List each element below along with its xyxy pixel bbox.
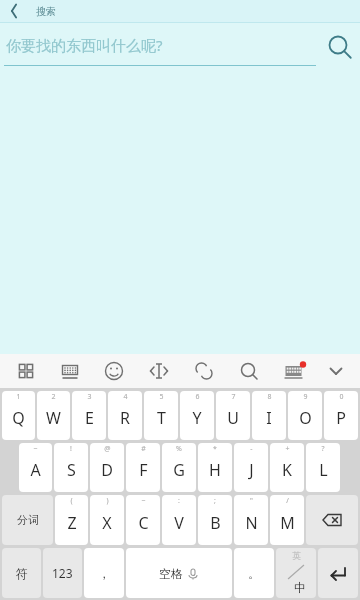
button[interactable]: Search bbox=[320, 27, 360, 67]
button[interactable]: Theme bbox=[271, 354, 316, 388]
button[interactable]: Backspace bbox=[306, 495, 358, 545]
button[interactable]: + bbox=[270, 443, 304, 492]
button[interactable]: 分词 bbox=[2, 495, 53, 545]
staticText: J bbox=[249, 459, 254, 481]
button[interactable]: 7 bbox=[216, 391, 250, 440]
staticText: L bbox=[319, 459, 328, 481]
staticText: R bbox=[120, 407, 130, 429]
button[interactable]: 3 bbox=[72, 391, 106, 440]
button[interactable]: 1 bbox=[2, 391, 35, 440]
button[interactable]: # bbox=[126, 443, 160, 492]
staticText: Y bbox=[192, 407, 202, 429]
button[interactable]: Collapse bbox=[316, 354, 356, 388]
staticText: 空格 bbox=[159, 566, 183, 581]
button[interactable]: 6 bbox=[180, 391, 214, 440]
staticText: O bbox=[299, 407, 312, 429]
staticText: ? bbox=[321, 444, 325, 454]
button[interactable]: " bbox=[234, 495, 268, 545]
staticText: S bbox=[67, 459, 76, 481]
button[interactable]: % bbox=[162, 443, 196, 492]
staticText: K bbox=[282, 459, 292, 481]
button[interactable]: : bbox=[162, 495, 196, 545]
staticText: A bbox=[30, 459, 41, 481]
staticText: ~ bbox=[141, 496, 146, 506]
staticText: Q bbox=[12, 407, 25, 429]
staticText: H bbox=[209, 459, 221, 481]
button[interactable]: ~ bbox=[126, 495, 160, 545]
staticText: # bbox=[141, 444, 146, 454]
staticText: 7 bbox=[231, 392, 236, 402]
staticText: ! bbox=[70, 444, 72, 454]
button[interactable]: 2 bbox=[37, 391, 70, 440]
staticText: ) bbox=[106, 496, 109, 506]
button[interactable]: ( bbox=[55, 495, 88, 545]
staticText: ; bbox=[214, 496, 216, 506]
button[interactable]: / bbox=[270, 495, 304, 545]
button[interactable]: ~ bbox=[19, 443, 52, 492]
staticText: 6 bbox=[195, 392, 200, 402]
staticText: 搜索 bbox=[36, 5, 56, 18]
button[interactable]: 4 bbox=[108, 391, 142, 440]
staticText: " bbox=[250, 496, 253, 506]
staticText: 中 bbox=[294, 580, 306, 595]
button[interactable]: Emoji bbox=[92, 354, 136, 388]
staticText: V bbox=[174, 512, 184, 534]
button[interactable]: - bbox=[234, 443, 268, 492]
button[interactable]: Search bbox=[226, 354, 271, 388]
button[interactable]: 5 bbox=[144, 391, 178, 440]
button[interactable]: ; bbox=[198, 495, 232, 545]
button[interactable]: 0 bbox=[324, 391, 358, 440]
staticText: N bbox=[245, 512, 258, 534]
staticText: @ bbox=[104, 444, 111, 454]
staticText: - bbox=[250, 444, 253, 454]
staticText: F bbox=[139, 459, 148, 481]
button[interactable]: Cursor bbox=[136, 354, 181, 388]
button[interactable]: Clipboard bbox=[181, 354, 226, 388]
staticText: : bbox=[178, 496, 180, 506]
button[interactable]: 123 bbox=[43, 548, 82, 598]
staticText: I bbox=[266, 407, 272, 429]
button[interactable]: Enter bbox=[318, 548, 358, 598]
staticText: 9 bbox=[303, 392, 308, 402]
staticText: 3 bbox=[87, 392, 92, 402]
button[interactable]: ! bbox=[54, 443, 88, 492]
staticText: ( bbox=[70, 496, 73, 506]
button[interactable]: 9 bbox=[288, 391, 322, 440]
staticText: B bbox=[210, 512, 221, 534]
staticText: X bbox=[102, 512, 112, 534]
staticText: 。 bbox=[248, 566, 260, 581]
staticText: ， bbox=[98, 566, 110, 581]
button[interactable]: 。 bbox=[234, 548, 274, 598]
button[interactable]: * bbox=[198, 443, 232, 492]
staticText: 0 bbox=[339, 392, 344, 402]
button[interactable]: 空格 bbox=[126, 548, 232, 598]
button[interactable]: 符 bbox=[2, 548, 41, 598]
button[interactable]: 8 bbox=[252, 391, 286, 440]
staticText: G bbox=[173, 459, 185, 481]
staticText: W bbox=[46, 407, 61, 429]
staticText: 英 bbox=[292, 550, 301, 561]
staticText: M bbox=[280, 512, 295, 534]
staticText: P bbox=[336, 407, 346, 429]
staticText: U bbox=[227, 407, 239, 429]
button[interactable]: Back bbox=[2, 0, 26, 22]
staticText: % bbox=[176, 444, 182, 454]
staticText: + bbox=[285, 444, 290, 454]
button[interactable]: ? bbox=[306, 443, 340, 492]
staticText: 分词 bbox=[17, 513, 39, 527]
staticText: 你要找的东西叫什么呢? bbox=[6, 35, 163, 55]
button[interactable]: Keyboard bbox=[48, 354, 92, 388]
staticText: 5 bbox=[159, 392, 164, 402]
staticText: C bbox=[138, 512, 149, 534]
button[interactable]: ) bbox=[90, 495, 124, 545]
staticText: Z bbox=[67, 512, 77, 534]
staticText: 符 bbox=[16, 566, 28, 581]
staticText: * bbox=[213, 444, 217, 454]
staticText: / bbox=[286, 496, 289, 506]
button[interactable]: ， bbox=[84, 548, 124, 598]
staticText: 1 bbox=[16, 392, 21, 402]
button[interactable]: Language toggle bbox=[276, 548, 316, 598]
button[interactable]: Grid bbox=[4, 354, 48, 388]
button[interactable]: @ bbox=[90, 443, 124, 492]
staticText: 123 bbox=[52, 565, 73, 581]
